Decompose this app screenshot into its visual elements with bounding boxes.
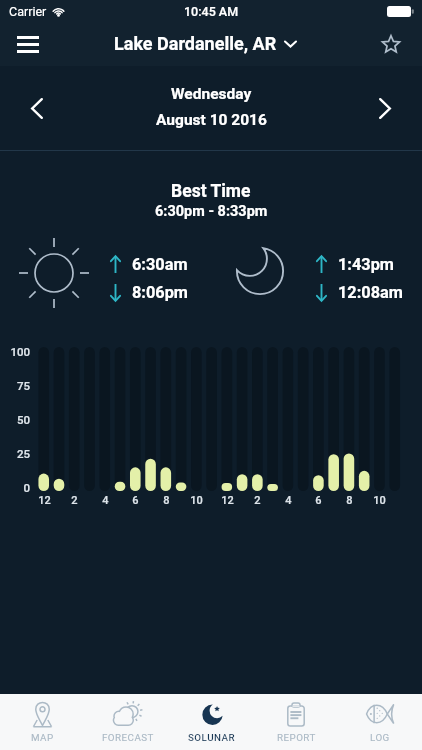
staticText: August 10 2016 [156,111,267,129]
staticText: 25 [16,447,30,460]
staticText: 2 [71,494,78,507]
staticText: 12:08am [338,283,403,302]
button[interactable]: SOLUNAR [170,694,254,750]
staticText: 8 [346,494,353,507]
staticText: 1:43pm [338,255,394,274]
staticText: 6:30pm - 8:33pm [155,203,268,220]
staticText: 100 [10,345,30,358]
button[interactable]: Open navigation menu [1,22,54,66]
staticText: LOG [370,732,390,743]
staticText: 2 [254,494,261,507]
staticText: Best Time [171,181,251,202]
staticText: 75 [16,379,30,392]
staticText: 10:45 AM [184,4,239,19]
button[interactable]: Lake Dardanelle, AR [114,33,297,54]
button[interactable]: LOG [338,694,422,750]
staticText: 6 [315,494,322,507]
button[interactable]: Previous day [7,66,67,151]
staticText: 8:06pm [132,283,188,302]
staticText: 0 [23,481,30,494]
staticText: 6:30am [132,255,188,274]
staticText: SOLUNAR [188,732,236,743]
button[interactable]: Next day [355,66,415,151]
staticText: 10 [373,494,386,507]
button[interactable]: Add to favorites [365,22,417,66]
staticText: REPORT [277,732,316,743]
staticText: Lake Dardanelle, AR [114,33,277,54]
staticText: Carrier [9,4,47,19]
staticText: 12 [221,494,234,507]
staticText: 10 [190,494,203,507]
staticText: Wednesday [171,85,252,103]
staticText: 4 [102,494,109,507]
staticText: 12 [38,494,51,507]
staticText: MAP [31,732,54,743]
staticText: 50 [16,413,30,426]
staticText: 8 [163,494,170,507]
staticText: 6 [132,494,139,507]
button[interactable]: REPORT [254,694,338,750]
button[interactable]: MAP [0,694,85,750]
staticText: 4 [285,494,292,507]
button[interactable]: FORECAST [85,694,170,750]
staticText: FORECAST [102,732,154,743]
